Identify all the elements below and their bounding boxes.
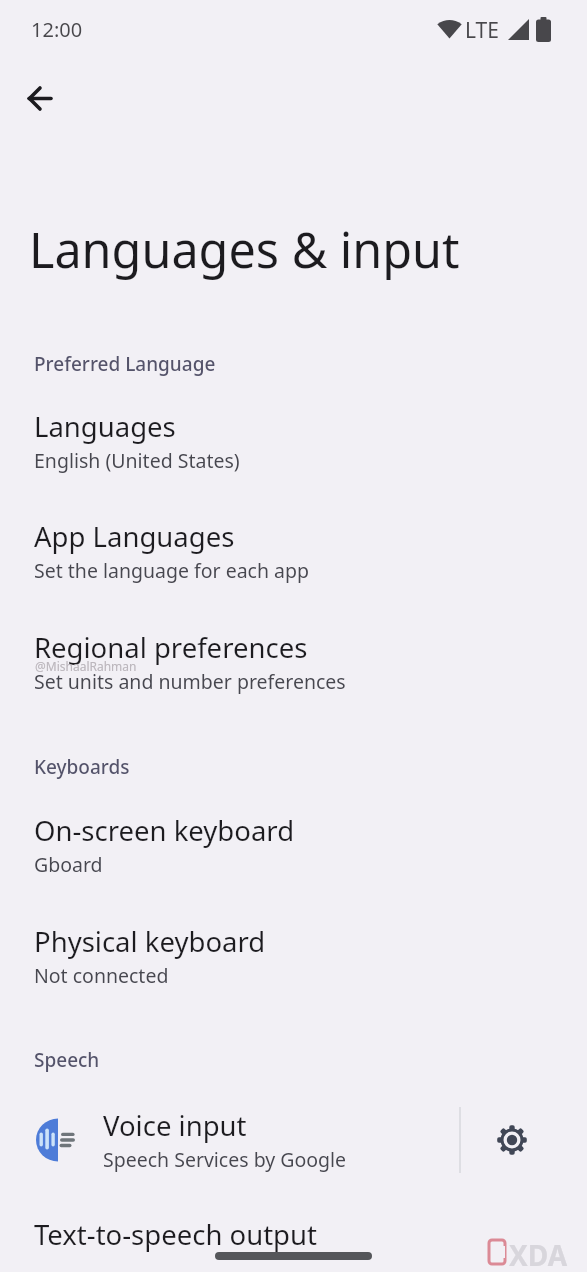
staticText: Not connected — [34, 962, 169, 989]
staticText: App Languages — [34, 518, 235, 555]
button[interactable]: On-screen keyboard — [0, 794, 587, 892]
staticText: Physical keyboard — [34, 923, 266, 960]
staticText: @MishaalRahman — [35, 658, 137, 674]
button[interactable] — [488, 1116, 536, 1164]
button[interactable]: Text-to-speech output — [0, 1198, 587, 1267]
button[interactable] — [19, 78, 60, 119]
button[interactable] — [0, 1096, 460, 1184]
staticText: Keyboards — [34, 754, 130, 780]
button[interactable]: Languages — [0, 390, 587, 488]
staticText: English (United States) — [34, 447, 240, 474]
staticText: Set units and number preferences — [34, 668, 346, 695]
staticText: Voice input — [103, 1107, 247, 1144]
staticText: LTE — [465, 16, 499, 45]
staticText: Speech — [34, 1047, 100, 1073]
staticText: Preferred Language — [34, 351, 216, 377]
staticText: Set the language for each app — [34, 557, 310, 584]
staticText: Languages & input — [29, 216, 460, 282]
staticText: Gboard — [34, 851, 103, 878]
staticText: Languages — [34, 408, 176, 445]
button[interactable]: Regional preferences — [0, 611, 587, 709]
staticText: Speech Services by Google — [103, 1146, 347, 1173]
staticText: XDA — [509, 1236, 568, 1270]
staticText: 12:00 — [31, 16, 83, 43]
button[interactable]: Physical keyboard — [0, 905, 587, 1003]
staticText: On-screen keyboard — [34, 812, 295, 849]
staticText: Regional preferences — [34, 629, 308, 666]
button[interactable]: App Languages — [0, 500, 587, 598]
staticText: Text-to-speech output — [34, 1216, 317, 1253]
